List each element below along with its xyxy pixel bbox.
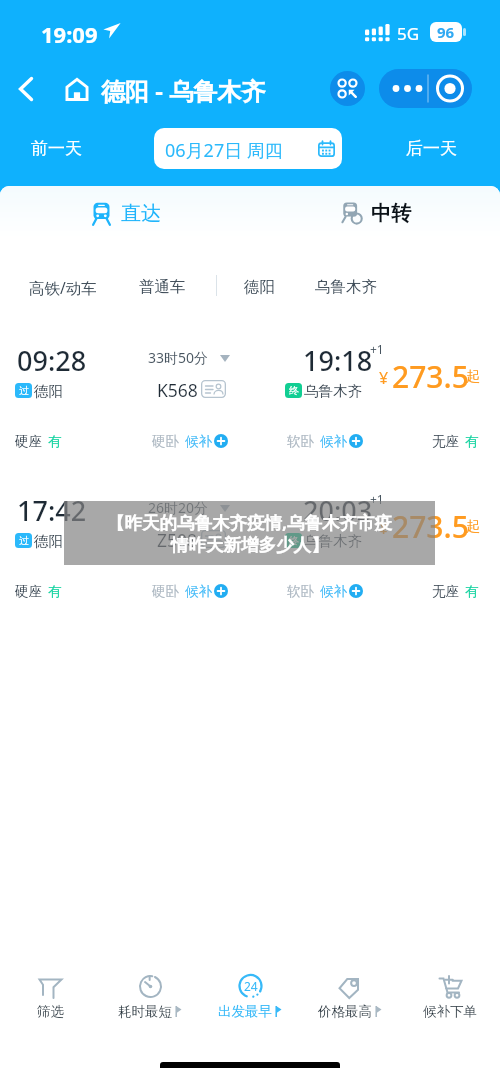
staticText: 33时50分 [148, 348, 209, 367]
staticText: 有 [465, 433, 479, 450]
staticText: 20:03 [303, 492, 373, 529]
staticText: 终 [289, 534, 299, 547]
staticText: 德阳 [34, 532, 63, 550]
staticText: 普通车 [139, 277, 186, 297]
button[interactable]: 硬座 [15, 430, 62, 452]
staticText: 德阳 [34, 382, 63, 400]
staticText: 硬座 [15, 433, 42, 450]
button[interactable]: 中转 [330, 194, 430, 234]
staticText: 过 [19, 534, 29, 547]
button[interactable]: 硬卧 [152, 580, 228, 602]
button[interactable]: Back [8, 71, 44, 107]
staticText: 情昨天新增多少人】 [171, 534, 329, 556]
staticText: 软卧 [287, 583, 314, 600]
staticText: 有 [48, 583, 62, 600]
staticText: 候补 [185, 583, 212, 600]
staticText: 起 [466, 368, 480, 386]
staticText: 起 [466, 518, 480, 536]
staticText: 德阳 - 乌鲁木齐 [101, 74, 266, 107]
staticText: 前一天 [31, 138, 82, 159]
button[interactable]: 候补下单 [400, 962, 500, 1026]
staticText: 无座 [432, 583, 459, 600]
button[interactable] [22, 270, 106, 300]
staticText: 【昨天的乌鲁木齐疫情,乌鲁木齐市疫 [107, 510, 392, 534]
staticText: 候补 [320, 433, 347, 450]
staticText: 候补 [320, 583, 347, 600]
staticText: 过 [19, 384, 29, 397]
button[interactable]: 筛选 [0, 962, 100, 1026]
button[interactable] [132, 270, 190, 300]
staticText: 5G [397, 22, 420, 45]
staticText: 价格最高 [318, 1003, 372, 1020]
button[interactable] [406, 130, 468, 164]
button[interactable]: 价格最高 [300, 962, 400, 1026]
button[interactable]: 无座 [432, 580, 479, 602]
staticText: 17:42 [17, 492, 87, 529]
button[interactable] [31, 130, 93, 164]
button[interactable]: 无座 [432, 430, 479, 452]
staticText: ¥ [379, 517, 389, 539]
staticText: 直达 [121, 201, 161, 226]
staticText: 硬卧 [152, 583, 179, 600]
staticText: 德阳 [244, 277, 275, 297]
staticText: 硬卧 [152, 433, 179, 450]
button[interactable]: 耗时最短 [100, 962, 200, 1026]
staticText: 19:18 [303, 342, 373, 379]
staticText: 筛选 [37, 1003, 64, 1020]
staticText: 出发最早 [218, 1003, 272, 1020]
button[interactable]: 硬卧 [152, 430, 228, 452]
staticText: 耗时最短 [118, 1003, 172, 1020]
staticText: 有 [465, 583, 479, 600]
staticText: 273.5 [392, 506, 469, 547]
staticText: 候补下单 [423, 1003, 477, 1020]
staticText: ¥ [379, 367, 389, 389]
staticText: 273.5 [392, 356, 469, 397]
staticText: 06月27日 周四 [165, 138, 283, 163]
staticText: 96 [437, 22, 455, 42]
button[interactable]: Apps [330, 71, 365, 106]
staticText: 硬座 [15, 583, 42, 600]
staticText: 软卧 [287, 433, 314, 450]
staticText: 终 [289, 384, 299, 397]
button[interactable]: 17:42 [0, 485, 500, 620]
staticText: 后一天 [406, 138, 457, 159]
button[interactable]: 24 [200, 962, 300, 1026]
staticText: 无座 [432, 433, 459, 450]
button[interactable] [306, 270, 378, 300]
staticText: 乌鲁木齐 [304, 382, 362, 400]
staticText: K568 [157, 378, 198, 402]
button[interactable]: 06月27日 周四 [154, 128, 342, 169]
staticText: +1 [370, 491, 384, 507]
button[interactable]: 软卧 [287, 430, 363, 452]
staticText: 24 [244, 978, 258, 994]
staticText: 乌鲁木齐 [304, 532, 362, 550]
staticText: 候补 [185, 433, 212, 450]
button[interactable]: 软卧 [287, 580, 363, 602]
staticText: 高铁/动车 [29, 277, 97, 298]
staticText: 乌鲁木齐 [315, 277, 377, 297]
button[interactable]: More options [379, 69, 472, 108]
button[interactable] [236, 270, 280, 300]
staticText: 19:09 [41, 19, 98, 49]
button[interactable]: 09:28 [0, 335, 500, 470]
button[interactable]: 直达 [80, 194, 180, 234]
staticText: 09:28 [17, 342, 87, 379]
staticText: Z508 [157, 528, 198, 552]
staticText: 有 [48, 433, 62, 450]
staticText: 中转 [371, 201, 411, 226]
button[interactable]: 硬座 [15, 580, 62, 602]
staticText: +1 [370, 341, 384, 357]
staticText: 26时20分 [148, 498, 209, 517]
button[interactable]: Home [58, 70, 96, 108]
